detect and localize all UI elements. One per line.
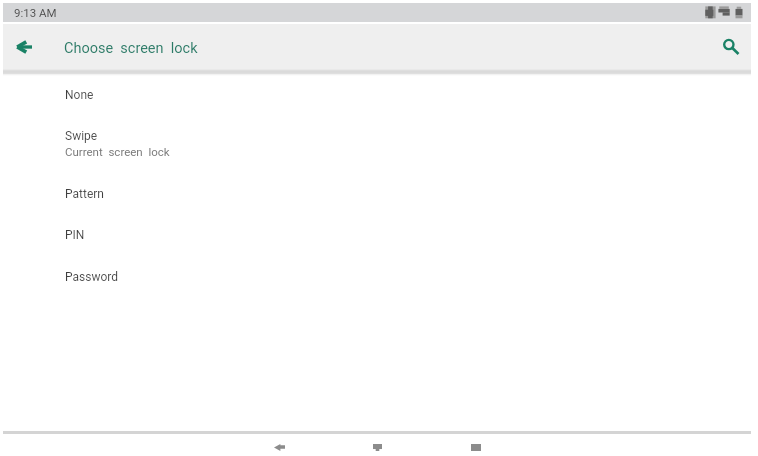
staticText: Current screen lock <box>65 145 170 158</box>
button[interactable]: Search <box>716 31 746 61</box>
staticText: Password <box>65 270 119 284</box>
button[interactable]: Home <box>329 438 426 456</box>
button[interactable]: Pattern <box>0 187 758 201</box>
button[interactable]: Navigate up <box>7 30 40 63</box>
button[interactable]: Password <box>0 270 758 284</box>
staticText: Swipe <box>65 129 98 143</box>
button[interactable]: Swipe <box>0 129 758 158</box>
button[interactable]: Recent apps <box>427 438 524 456</box>
button[interactable]: None <box>0 88 758 102</box>
staticText: Choose screen lock <box>64 40 198 57</box>
button[interactable]: PIN <box>0 228 758 242</box>
staticText: 9:13 AM <box>14 6 57 19</box>
staticText: Pattern <box>65 187 104 201</box>
button[interactable]: Back <box>231 438 328 456</box>
staticText: PIN <box>65 228 85 242</box>
staticText: None <box>65 88 94 102</box>
